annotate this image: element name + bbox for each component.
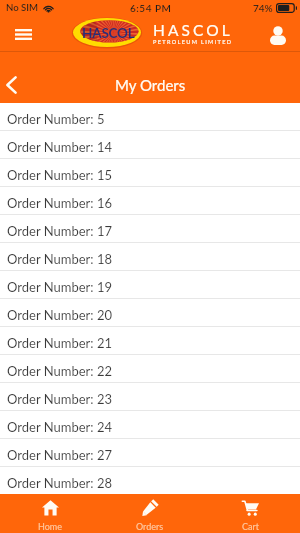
button[interactable]: Cart [200,494,300,533]
button[interactable]: Order Number: 16 [0,187,300,215]
button[interactable]: Order Number: 23 [0,383,300,411]
button[interactable]: Order Number: 19 [0,271,300,299]
staticText: 74% [253,2,273,14]
button[interactable]: Order Number: 17 [0,215,300,243]
staticText: Order Number: 19 [7,279,112,295]
button[interactable]: Order Number: 18 [0,243,300,271]
button[interactable]: Order Number: 27 [0,439,300,467]
staticText: Cart [242,521,259,532]
staticText: Order Number: 22 [7,363,112,379]
staticText: Order Number: 24 [7,419,112,435]
button[interactable]: Profile [262,16,300,52]
staticText: Order Number: 15 [7,167,112,183]
button[interactable]: Order Number: 21 [0,327,300,355]
staticText: Order Number: 21 [7,335,112,351]
staticText: No SIM [6,2,39,14]
button[interactable]: Order Number: 22 [0,355,300,383]
staticText: HASCOL [82,25,135,41]
staticText: Order Number: 28 [7,475,112,491]
staticText: 6:54 PM [130,2,172,14]
button[interactable]: Order Number: 28 [0,467,300,494]
button[interactable]: Order Number: 14 [0,131,300,159]
button[interactable]: Order Number: 24 [0,411,300,439]
button[interactable]: Order Number: 5 [0,103,300,131]
staticText: Order Number: 14 [7,139,112,155]
staticText: Order Number: 18 [7,251,112,267]
button[interactable]: Order Number: 20 [0,299,300,327]
staticText: Orders [136,521,164,532]
button[interactable]: Orders [100,494,200,533]
staticText: My Orders [115,76,186,94]
staticText: Home [38,521,62,532]
staticText: Order Number: 23 [7,391,112,407]
button[interactable]: Home [0,494,100,533]
staticText: Order Number: 5 [7,111,105,127]
staticText: PETROLEUM LIMITED [153,38,233,45]
button[interactable]: Order Number: 15 [0,159,300,187]
staticText: Order Number: 16 [7,195,112,211]
staticText: Order Number: 17 [7,223,112,239]
staticText: Order Number: 27 [7,447,112,463]
button[interactable]: Menu [0,16,44,52]
staticText: HASCOL [153,21,233,40]
button[interactable]: Back [0,68,28,102]
staticText: Order Number: 20 [7,307,112,323]
